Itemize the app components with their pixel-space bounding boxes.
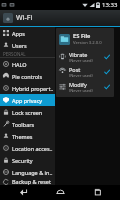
staticText: Themes xyxy=(12,133,33,140)
button[interactable]: Hybrid propert.. xyxy=(0,82,55,94)
staticText: Language & in.. xyxy=(12,169,53,176)
staticText: ES File Explorer xyxy=(73,32,111,40)
button[interactable]: Post notification xyxy=(56,64,114,79)
button[interactable]: Modify settings xyxy=(56,79,114,94)
staticText: Version 3.2.0.0 xyxy=(73,40,102,46)
staticText: (Never used) xyxy=(69,88,93,93)
staticText: Wi-Fi xyxy=(16,13,33,23)
button[interactable]: Lock screen xyxy=(0,106,55,118)
button[interactable]: App privacy xyxy=(0,94,55,106)
button[interactable]: Toggle Vibrate permission xyxy=(103,53,111,61)
button[interactable]: Pie controls xyxy=(0,70,55,82)
staticText: Hybrid propert.. xyxy=(12,85,54,92)
staticText: Modify settings xyxy=(69,81,103,88)
staticText: App privacy xyxy=(12,97,43,104)
staticText: Post notification xyxy=(69,66,103,73)
button[interactable]: Toggle Post notification permission xyxy=(103,68,111,76)
staticText: (Never used) xyxy=(69,73,93,78)
button[interactable]: Themes xyxy=(0,130,55,142)
button[interactable]: Security xyxy=(0,154,55,166)
staticText: Toolbars xyxy=(12,121,35,128)
staticText: Backup & reset xyxy=(12,178,51,185)
staticText: PERSONAL xyxy=(3,51,26,56)
button[interactable]: Vibrate xyxy=(56,49,114,64)
button[interactable]: Apps xyxy=(0,27,55,39)
staticText: Users xyxy=(12,42,27,49)
button[interactable]: Recents xyxy=(83,185,111,200)
button[interactable]: Toolbars xyxy=(0,118,55,130)
staticText: HALO xyxy=(12,61,27,68)
button[interactable]: Users xyxy=(0,39,55,51)
button[interactable]: Wi-Fi xyxy=(0,10,120,26)
staticText: Security xyxy=(12,157,33,164)
staticText: Lock screen xyxy=(12,109,43,116)
staticText: (Never used) xyxy=(69,58,93,63)
button[interactable]: Toggle Modify settings permission xyxy=(103,83,111,91)
staticText: 13:33 xyxy=(102,1,118,9)
staticText: Apps xyxy=(12,30,25,37)
button[interactable]: Location acces.. xyxy=(0,142,55,154)
button[interactable]: Backup & reset xyxy=(0,178,55,185)
staticText: Location acces.. xyxy=(12,145,53,152)
button[interactable]: Language & in.. xyxy=(0,166,55,178)
button[interactable]: Home xyxy=(46,185,74,200)
staticText: Pie controls xyxy=(12,73,43,80)
button[interactable]: HALO xyxy=(0,58,55,70)
button[interactable]: Back xyxy=(9,185,37,200)
staticText: Vibrate xyxy=(69,51,88,58)
button[interactable]: ES File Explorer xyxy=(56,31,114,47)
